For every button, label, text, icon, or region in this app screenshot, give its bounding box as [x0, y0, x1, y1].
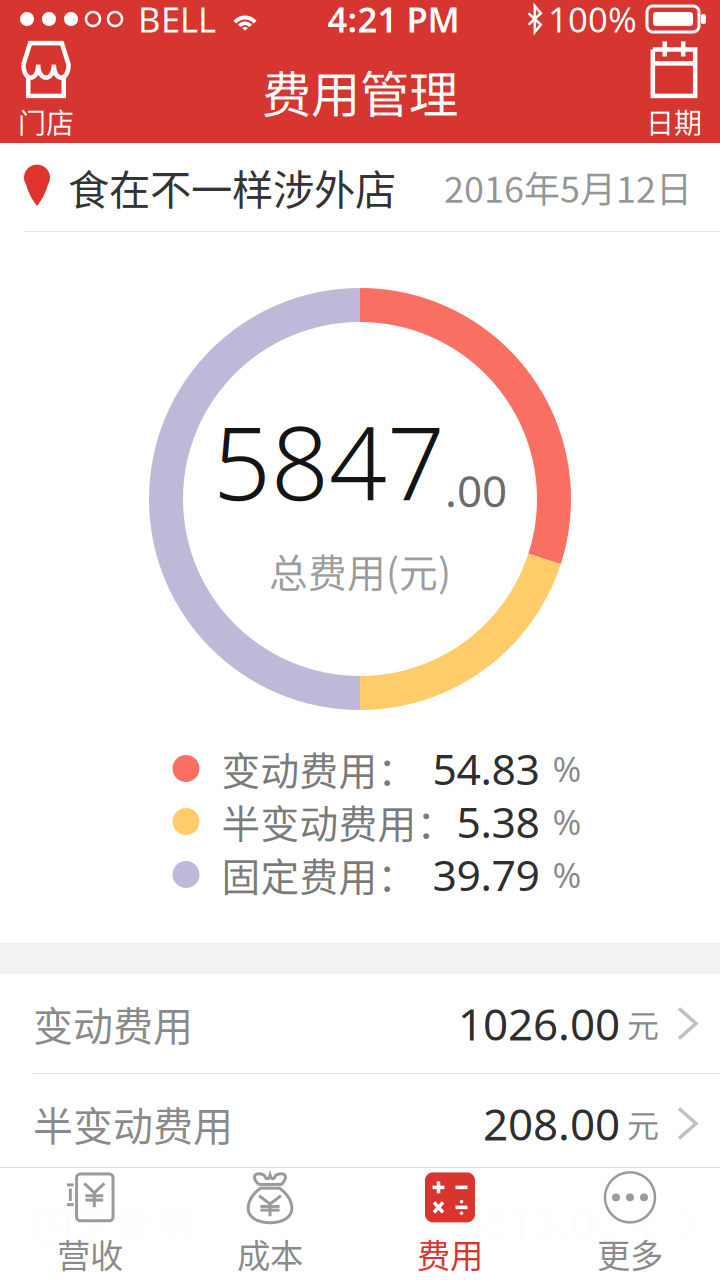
staticText: BELL	[138, 0, 216, 42]
staticText: 门店	[18, 101, 74, 142]
staticText: 39.79	[432, 846, 539, 903]
staticText: 元	[627, 1000, 659, 1047]
staticText: 固定费用	[33, 1194, 193, 1252]
staticText: 半变动费用	[33, 1094, 233, 1152]
staticText: 元	[627, 1100, 659, 1147]
button[interactable]: 变动费用	[0, 974, 720, 1074]
button[interactable]: 费用	[360, 1168, 540, 1279]
staticText: 4613.00	[458, 1194, 620, 1253]
staticText: 食在不一样涉外店	[68, 157, 396, 217]
staticText: 营收	[57, 1229, 123, 1278]
staticText: 5.38	[456, 793, 539, 850]
staticText: 100%	[548, 0, 637, 42]
staticText: 变动费用	[33, 994, 193, 1052]
button[interactable]: 日期	[628, 39, 720, 143]
staticText: 208.00	[483, 1094, 620, 1153]
staticText: 费用	[417, 1229, 483, 1278]
button[interactable]: 更多	[540, 1168, 720, 1279]
button[interactable]: 成本	[180, 1168, 360, 1279]
staticText: 固定费用：	[221, 846, 416, 902]
staticText: 成本	[237, 1229, 303, 1278]
staticText: 54.83	[432, 740, 539, 797]
staticText: %	[552, 851, 581, 897]
staticText: 日期	[646, 101, 702, 142]
staticText: 2016年5月12日	[444, 161, 692, 213]
staticText: 4:21 PM	[327, 0, 459, 42]
button[interactable]: 半变动费用	[0, 1074, 720, 1174]
staticText: 变动费用：	[221, 740, 416, 796]
staticText: 半变动费用：	[221, 793, 455, 849]
staticText: 5847	[213, 394, 445, 528]
staticText: 总费用(元)	[269, 542, 451, 598]
staticText: 更多	[597, 1229, 663, 1278]
staticText: %	[552, 798, 581, 844]
staticText: %	[552, 745, 581, 791]
staticText: 元	[627, 1200, 659, 1247]
staticText: .00	[445, 461, 507, 519]
button[interactable]: 门店	[0, 39, 92, 143]
button[interactable]: 营收	[0, 1168, 180, 1279]
staticText: 费用管理	[262, 55, 458, 127]
staticText: 1026.00	[458, 994, 620, 1053]
